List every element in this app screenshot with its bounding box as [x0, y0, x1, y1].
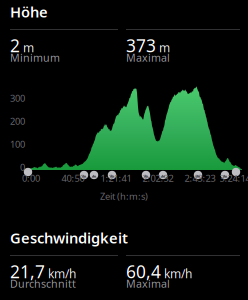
- staticText: 40:50: [61, 172, 84, 184]
- staticText: 2:02:32: [142, 172, 173, 184]
- staticText: 200: [10, 115, 25, 127]
- staticText: Durchschnitt: [10, 276, 76, 291]
- staticText: 3:24:14: [219, 172, 248, 184]
- staticText: Höhe: [10, 2, 48, 21]
- staticText: 21,7: [10, 260, 45, 283]
- staticText: 0:00: [22, 172, 40, 184]
- staticText: 0: [20, 161, 25, 173]
- staticText: 2: [10, 34, 20, 57]
- staticText: 60,4: [126, 260, 161, 283]
- staticText: 1:21:41: [100, 172, 131, 184]
- staticText: Minimum: [10, 50, 60, 65]
- staticText: 2:43:23: [184, 172, 215, 184]
- staticText: m: [23, 40, 34, 55]
- staticText: km/h: [48, 266, 76, 281]
- staticText: m: [159, 40, 170, 55]
- staticText: km/h: [164, 266, 192, 281]
- staticText: 100: [10, 138, 25, 150]
- staticText: 300: [10, 92, 25, 104]
- staticText: Maximal: [126, 50, 170, 65]
- staticText: Geschwindigkeit: [10, 228, 128, 247]
- staticText: Maximal: [126, 276, 170, 291]
- staticText: 373: [126, 34, 156, 57]
- staticText: Zeit (h:m:s): [100, 190, 148, 202]
